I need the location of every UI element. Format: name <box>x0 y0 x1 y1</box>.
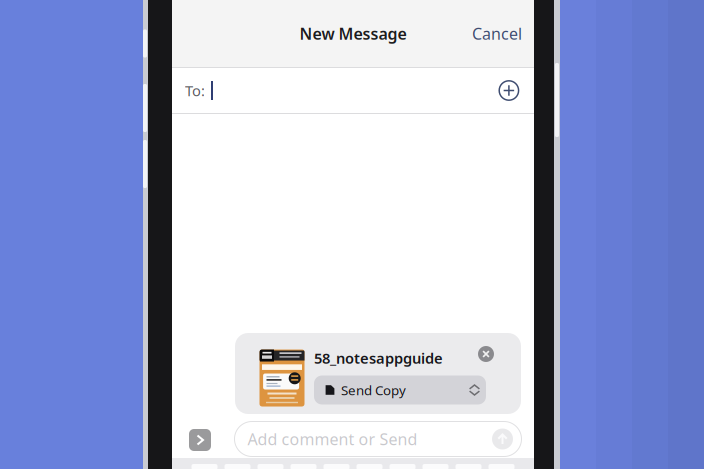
staticText: Cancel <box>472 23 522 44</box>
button[interactable]: Show iMessage apps <box>184 424 216 456</box>
button[interactable]: Add contact <box>490 73 528 108</box>
staticText: 58_notesappguide <box>314 348 443 368</box>
staticText: New Message <box>299 23 406 44</box>
button[interactable]: Send <box>489 425 516 452</box>
button[interactable]: Send Copy <box>314 375 486 404</box>
staticText: To: <box>185 81 205 100</box>
button[interactable]: Cancel <box>458 13 534 54</box>
staticText: Send Copy <box>341 381 406 399</box>
button[interactable]: Remove attachment <box>473 341 499 367</box>
staticText: Add comment or Send <box>247 428 417 450</box>
